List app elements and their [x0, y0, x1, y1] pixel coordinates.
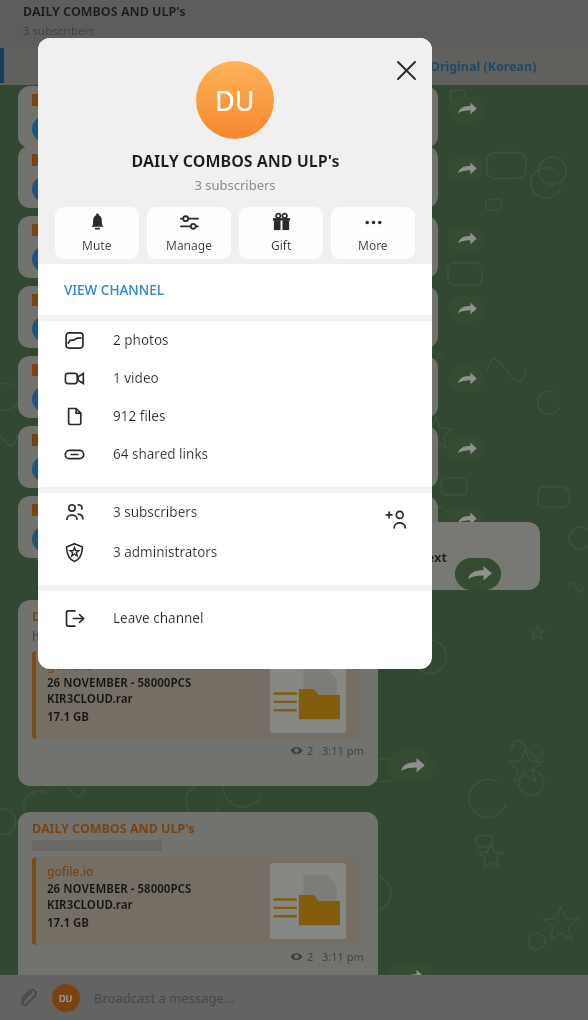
button[interactable]: Manage: [147, 207, 231, 259]
staticText: KIR3CLOUD.rar: [47, 897, 133, 913]
staticText: 3 subscribers: [23, 23, 95, 39]
staticText: 3:11 pm: [322, 949, 364, 964]
staticText: 17.1 GB: [47, 915, 89, 931]
button[interactable]: 1 video: [38, 359, 432, 397]
button[interactable]: Leave channel: [38, 599, 432, 637]
staticText: 2: [307, 743, 314, 758]
staticText: 912 files: [113, 407, 166, 425]
staticText: 1 video: [113, 369, 159, 387]
button[interactable]: Mute: [55, 207, 139, 259]
staticText: DAILY COMBOS AND ULP's: [32, 820, 195, 837]
staticText: https://gofile.io/d/bPhTYD: [32, 628, 186, 645]
staticText: 26 NOVEMBER - 58000PCS: [47, 881, 192, 897]
staticText: 2 photos: [113, 331, 169, 349]
staticText: m: [422, 569, 433, 584]
staticText: KIR3CLOUD.rar: [47, 691, 133, 707]
staticText: Broadcast a message...: [94, 989, 235, 1007]
staticText: Mute: [82, 237, 112, 253]
button[interactable]: Close: [386, 50, 426, 90]
staticText: DU: [215, 82, 255, 119]
staticText: DU: [59, 992, 73, 1004]
staticText: 3 administrators: [113, 543, 218, 561]
staticText: 3 subscribers: [194, 176, 276, 194]
button[interactable]: 2 photos: [38, 321, 432, 359]
button[interactable]: 3 administrators: [38, 533, 432, 571]
staticText: 64 shared links: [113, 445, 209, 463]
staticText: Original (Korean): [430, 58, 537, 75]
staticText: More: [358, 237, 388, 253]
staticText: 26 NOVEMBER - 58000PCS: [47, 675, 192, 691]
button[interactable]: More: [331, 207, 415, 259]
staticText: Gift: [271, 237, 292, 253]
button[interactable]: 3 subscribers: [38, 493, 432, 531]
button[interactable]: 64 shared links: [38, 435, 432, 473]
staticText: next: [418, 548, 448, 566]
staticText: 2: [307, 949, 314, 964]
button[interactable]: VIEW CHANNEL: [38, 264, 432, 315]
staticText: Leave channel: [113, 609, 204, 627]
staticText: gofile.io: [47, 863, 94, 879]
staticText: 17.1 GB: [47, 709, 89, 725]
staticText: 3:11 pm: [322, 743, 364, 758]
staticText: DAILY COMBOS AND ULP's: [32, 608, 195, 625]
staticText: 3 subscribers: [113, 503, 198, 521]
staticText: VIEW CHANNEL: [64, 281, 165, 299]
staticText: DAILY COMBOS AND ULP's: [131, 150, 340, 172]
staticText: DAILY COMBOS AND ULP's: [23, 3, 186, 20]
button[interactable]: Gift: [239, 207, 323, 259]
staticText: Manage: [166, 237, 212, 253]
button[interactable]: 912 files: [38, 397, 432, 435]
button[interactable]: Add subscriber: [376, 499, 416, 539]
staticText: gofile.io: [47, 657, 94, 673]
